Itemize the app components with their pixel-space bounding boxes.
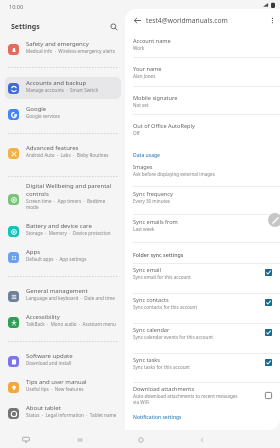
- staticText: Google: [26, 105, 47, 113]
- staticText: Language and keyboard · Date and time: [26, 295, 115, 301]
- staticText: General management: [26, 287, 88, 295]
- staticText: Last week: [133, 226, 155, 232]
- staticText: Your name: [133, 65, 162, 73]
- staticText: Account name: [133, 37, 171, 45]
- button[interactable]: Recents: [71, 431, 88, 448]
- button[interactable]: Account name: [125, 34, 280, 53]
- staticText: Ask before displaying external images: [133, 171, 215, 177]
- staticText: Alan Jones: [133, 73, 156, 79]
- staticText: Battery and device care: [26, 222, 92, 230]
- staticText: mode: [26, 204, 39, 210]
- button[interactable]: Sync email: [263, 267, 274, 278]
- button[interactable]: Download attachments: [263, 390, 274, 401]
- staticText: Sync contacts: [133, 296, 169, 304]
- staticText: Android Auto · Labs · Bixby Routines: [26, 152, 109, 158]
- button[interactable]: Safety and emergency: [5, 38, 121, 60]
- button[interactable]: Your name: [125, 62, 280, 81]
- button[interactable]: Out of Office AutoReply: [125, 119, 280, 138]
- staticText: Auto-download attachments to recent mess…: [133, 393, 238, 399]
- staticText: Sync email for this account: [133, 274, 191, 280]
- staticText: 10:00: [9, 3, 24, 10]
- staticText: Manage accounts · Smart Switch: [26, 87, 99, 93]
- button[interactable]: Sync tasks: [125, 353, 280, 372]
- button[interactable]: Home: [132, 431, 149, 448]
- button[interactable]: Sync contacts: [125, 293, 280, 312]
- button[interactable]: Software update: [5, 350, 121, 372]
- staticText: via WiFi: [133, 399, 150, 405]
- staticText: Apps: [26, 248, 41, 256]
- staticText: Google services: [26, 113, 60, 119]
- staticText: Images: [133, 163, 153, 171]
- button[interactable]: Digital Wellbeing and parental: [5, 184, 121, 214]
- staticText: Notification settings: [133, 414, 182, 421]
- staticText: Mobile signature: [133, 94, 178, 102]
- staticText: Off: [133, 130, 140, 136]
- button[interactable]: Back: [129, 12, 145, 28]
- button[interactable]: Back: [193, 431, 210, 448]
- staticText: Out of Office AutoReply: [133, 122, 195, 130]
- button[interactable]: Google: [5, 103, 121, 125]
- button[interactable]: Search: [107, 20, 121, 34]
- staticText: Advanced features: [26, 144, 79, 152]
- staticText: Every 30 minutes: [133, 198, 170, 204]
- button[interactable]: Images: [125, 160, 280, 179]
- staticText: Sync calendar: [133, 326, 170, 334]
- button[interactable]: Sync email: [125, 263, 280, 282]
- button[interactable]: Accessibility: [5, 311, 121, 333]
- button[interactable]: Tips and user manual: [5, 376, 121, 398]
- staticText: Software update: [26, 352, 73, 360]
- staticText: Not set: [133, 102, 149, 108]
- button[interactable]: Compose: [268, 213, 280, 227]
- staticText: Screen time · App timers · Bedtime: [26, 198, 106, 204]
- staticText: Accessibility: [26, 313, 60, 321]
- staticText: Sync contacts for this account: [133, 304, 198, 310]
- button[interactable]: Sync frequency: [125, 187, 280, 206]
- button[interactable]: Hide keyboard: [17, 431, 34, 448]
- button[interactable]: Sync calendar: [125, 323, 280, 342]
- button[interactable]: Sync emails from: [125, 215, 280, 234]
- staticText: Sync tasks: [133, 356, 161, 364]
- staticText: Safety and emergency: [26, 40, 89, 48]
- staticText: Tips and user manual: [26, 378, 87, 386]
- button[interactable]: About tablet: [5, 402, 121, 424]
- button[interactable]: Mobile signature: [125, 91, 280, 110]
- staticText: Download and install: [26, 360, 72, 366]
- button[interactable]: Sync tasks: [263, 357, 274, 368]
- staticText: Sync emails from: [133, 218, 178, 226]
- staticText: Digital Wellbeing and parental: [26, 184, 112, 190]
- staticText: Storage · Memory · Device protection: [26, 230, 111, 236]
- button[interactable]: General management: [5, 285, 121, 307]
- staticText: test4@worldmanuals.com: [146, 16, 228, 25]
- staticText: Status · Legal information · Tablet name: [26, 412, 117, 418]
- button[interactable]: Advanced features: [5, 142, 121, 164]
- staticText: Sync email: [133, 266, 161, 274]
- staticText: Sync tasks for this account: [133, 364, 191, 370]
- staticText: Work: [133, 45, 145, 51]
- button[interactable]: Apps: [5, 246, 121, 268]
- button[interactable]: Sync contacts: [263, 297, 274, 308]
- staticText: Settings: [11, 22, 40, 32]
- staticText: TalkBack · Mono audio · Assistant menu: [26, 321, 116, 327]
- staticText: About tablet: [26, 404, 61, 412]
- staticText: Default apps · App settings: [26, 256, 87, 262]
- staticText: controls: [26, 190, 49, 198]
- button[interactable]: Battery and device care: [5, 220, 121, 242]
- staticText: Accounts and backup: [26, 79, 87, 87]
- button[interactable]: Accounts and backup: [5, 77, 121, 99]
- staticText: Data usage: [133, 152, 160, 159]
- staticText: Folder sync settings: [133, 251, 184, 258]
- staticText: Medical info · Wireless emergency alerts: [26, 48, 115, 54]
- button[interactable]: Download attachments: [125, 382, 280, 408]
- button[interactable]: More options: [264, 12, 280, 28]
- staticText: Useful tips · New features: [26, 386, 84, 392]
- staticText: Sync frequency: [133, 190, 173, 198]
- button[interactable]: Sync calendar: [263, 327, 274, 338]
- staticText: Sync calendar events for this account: [133, 334, 213, 340]
- staticText: Download attachments: [133, 385, 195, 393]
